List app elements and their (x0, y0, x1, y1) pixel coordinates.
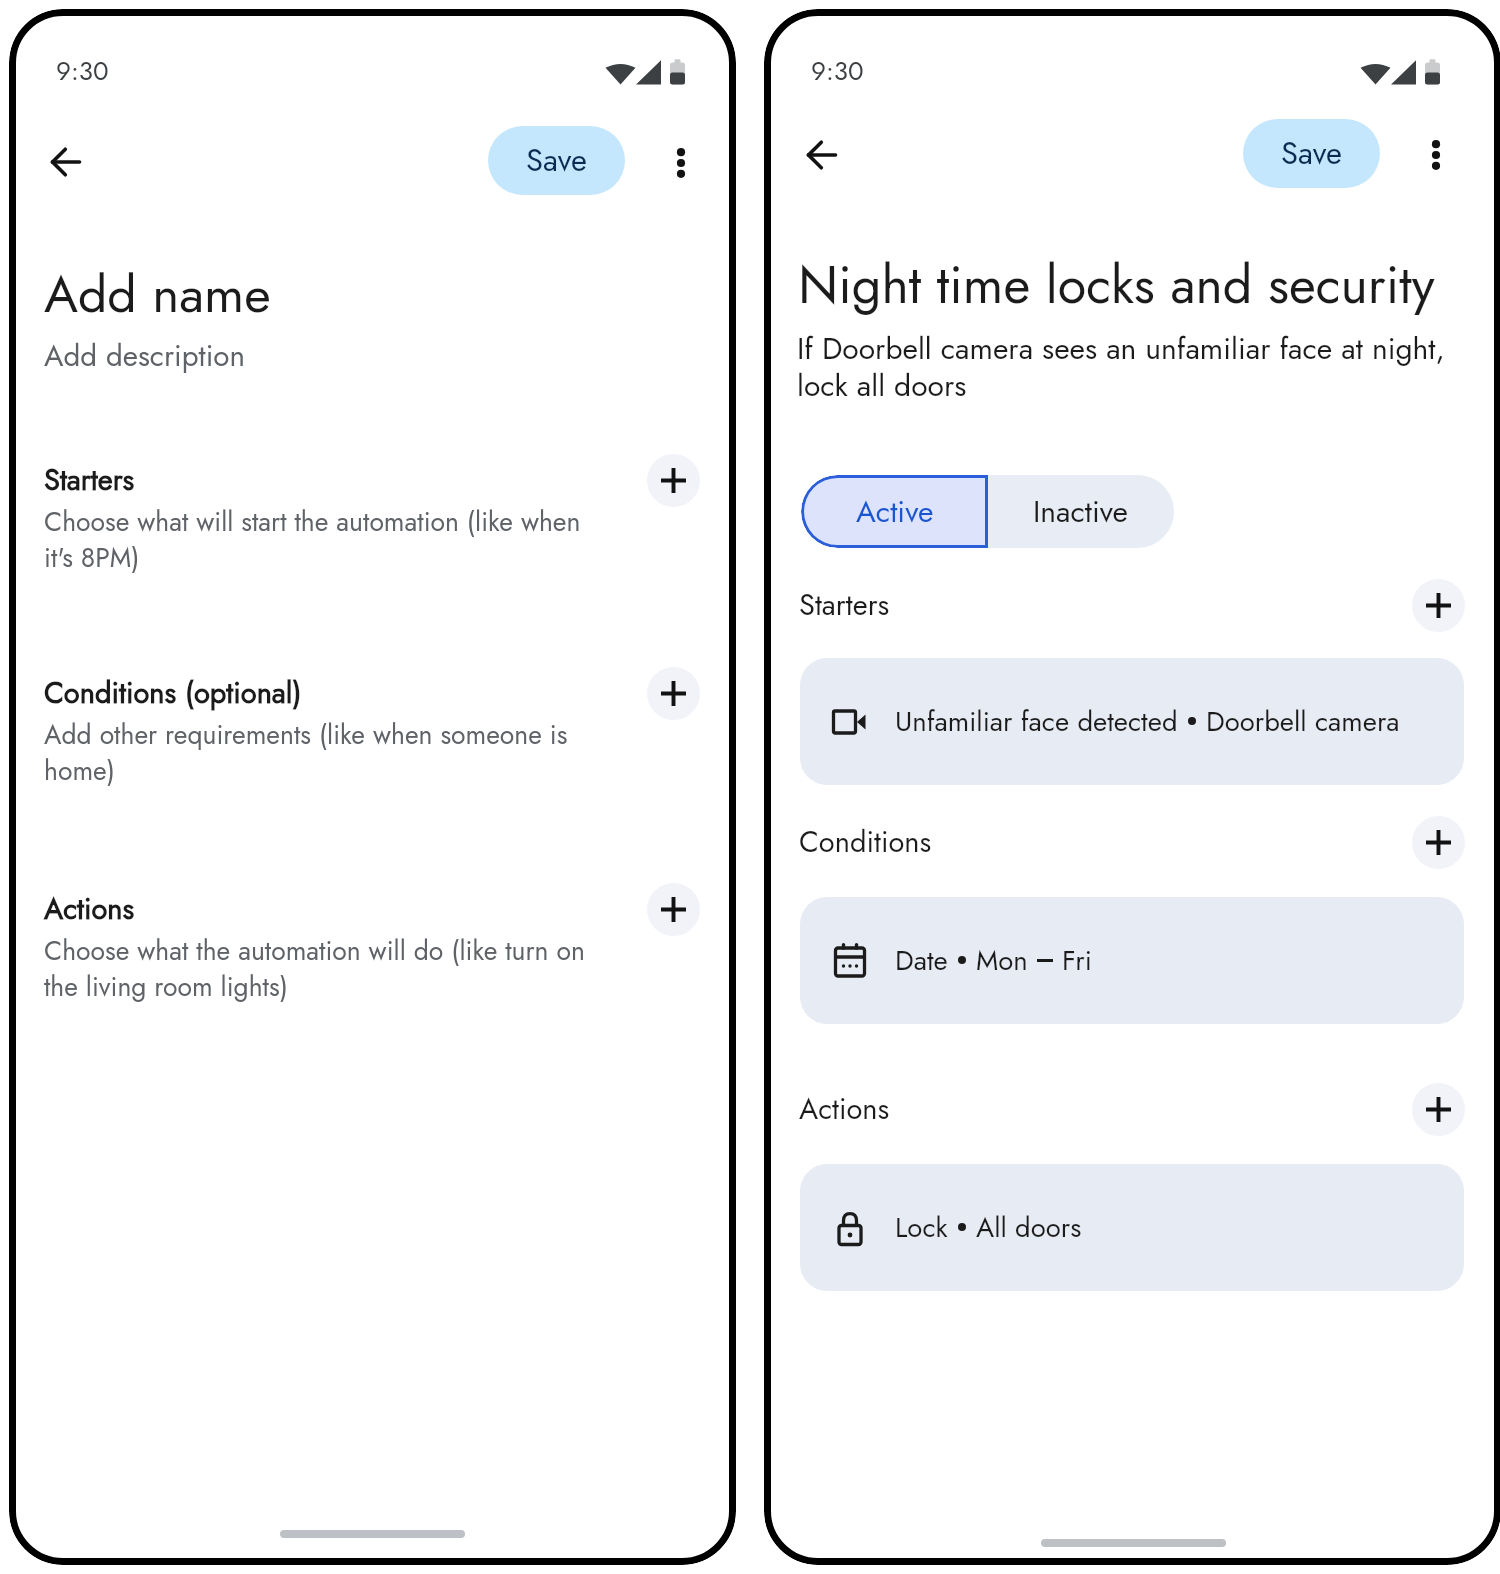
staticText: Save (1281, 131, 1342, 176)
staticText: Inactive (1033, 490, 1129, 533)
button[interactable]: Back (38, 134, 94, 190)
button[interactable]: Starters (44, 459, 644, 579)
staticText: Fri (1062, 941, 1092, 981)
staticText: 9:30 (56, 52, 109, 90)
button[interactable]: Add Starters (647, 454, 700, 507)
staticText: Conditions (799, 821, 932, 863)
button[interactable]: Lock (800, 1164, 1464, 1291)
button[interactable]: Add Actions (647, 883, 700, 936)
button[interactable]: Actions (44, 888, 644, 1008)
staticText: Starters (799, 584, 890, 626)
staticText: Doorbell camera (1206, 702, 1400, 742)
button[interactable]: Unfamiliar face detected (800, 658, 1464, 785)
staticText: If Doorbell camera sees an unfamiliar fa… (797, 327, 1465, 408)
staticText: Starters (44, 459, 135, 501)
button[interactable]: Inactive (988, 475, 1174, 548)
staticText: Conditions (optional) (44, 672, 302, 714)
staticText: Add other requirements (like when someon… (44, 716, 568, 790)
staticText: Lock (895, 1208, 948, 1248)
button[interactable]: Conditions (optional) (44, 672, 644, 792)
staticText: Night time locks and security (798, 247, 1435, 322)
staticText: Mon (976, 941, 1028, 981)
button[interactable]: Starters (799, 584, 1359, 632)
staticText: Active (856, 490, 934, 533)
staticText: All doors (976, 1208, 1082, 1248)
staticText: 9:30 (811, 52, 864, 90)
staticText: Save (526, 138, 587, 183)
staticText: Actions (44, 888, 135, 930)
staticText: Add name (44, 257, 271, 331)
staticText: Choose what the automation will do (like… (44, 932, 585, 1006)
button[interactable]: Actions (799, 1088, 1359, 1136)
staticText: Actions (799, 1088, 890, 1130)
staticText: Date (895, 941, 948, 981)
button[interactable]: More options (1408, 127, 1464, 183)
button[interactable]: More options (653, 135, 709, 191)
button[interactable]: Conditions (799, 821, 1359, 869)
button[interactable]: Save (1243, 119, 1380, 188)
button[interactable]: Add Conditions (1412, 816, 1465, 869)
button[interactable]: Date (800, 897, 1464, 1024)
button[interactable]: Back (794, 127, 850, 183)
staticText: Choose what will start the automation (l… (44, 503, 581, 577)
button[interactable]: Active (801, 475, 988, 548)
button[interactable]: Save (488, 126, 625, 195)
button[interactable]: Add Conditions (optional) (647, 667, 700, 720)
button[interactable]: Add Actions (1412, 1083, 1465, 1136)
staticText: Unfamiliar face detected (895, 702, 1178, 742)
button[interactable]: Add Starters (1412, 579, 1465, 632)
staticText: Add description (44, 334, 245, 377)
